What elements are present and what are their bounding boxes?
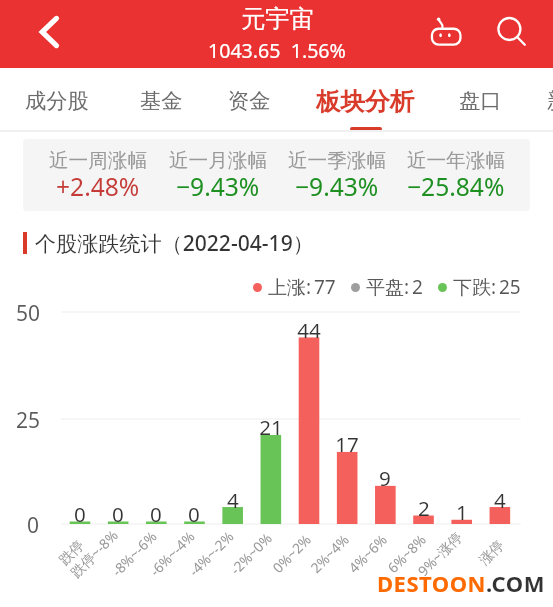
staticText: 元宇宙 [241,4,314,34]
staticText: 板块分析 [316,86,414,117]
staticText: 新闻 [547,88,553,115]
button[interactable]: 近一月涨幅 [158,139,277,211]
staticText: 4%~6% [344,530,391,577]
staticText: 21 [259,413,283,441]
button[interactable]: 平盘: [351,274,421,300]
staticText: 盘口 [459,88,502,115]
button[interactable]: 新闻 [547,68,553,131]
staticText: 1043.65 1.56% [208,37,346,64]
staticText: 17 [335,430,359,458]
button[interactable]: 成分股 [25,68,89,131]
staticText: −9.43% [295,170,379,204]
button[interactable]: 近一年涨幅 [396,139,515,211]
staticText: 0 [188,500,200,528]
staticText: 近一周涨幅 [49,148,147,173]
staticText: 6%~8% [383,530,430,577]
staticText: 2 [418,494,430,522]
button[interactable]: 盘口 [459,68,502,131]
staticText: 50 [16,299,41,328]
staticText: 平盘: [366,274,410,300]
staticText: 9 [379,464,391,492]
staticText: 0 [112,500,124,528]
staticText: 0 [150,500,162,528]
staticText: 近一年涨幅 [407,148,505,173]
staticText: 个股涨跌统计（2022-04-19） [35,228,314,257]
staticText: 25 [499,274,521,300]
staticText: 涨停 [476,537,508,569]
staticText: -6%~-4% [145,527,198,580]
staticText: -4%~-2% [184,527,237,580]
staticText: 基金 [140,88,183,115]
staticText: −25.84% [407,170,505,204]
button[interactable]: Search [492,15,528,51]
staticText: 9%~涨停 [413,527,466,580]
button[interactable]: 基金 [140,68,183,131]
button[interactable]: 下跌: [438,274,519,300]
staticText: 0 [74,500,86,528]
staticText: DESTOON [377,568,486,598]
staticText: 跌停 [56,537,88,569]
staticText: −9.43% [176,170,260,204]
staticText: 1 [456,498,468,526]
staticText: 跌停~-8% [66,526,122,581]
staticText: 资金 [228,88,271,115]
staticText: 2%~4% [306,530,353,577]
staticText: 25 [16,406,41,435]
staticText: 77 [314,274,336,300]
staticText: 成分股 [25,88,89,115]
staticText: 近一季涨幅 [288,148,386,173]
staticText: 上涨: [268,274,312,300]
staticText: 0%~2% [268,530,315,577]
staticText: -8%~-6% [107,527,160,580]
button[interactable]: Back [25,8,73,56]
button[interactable]: Assistant [427,15,463,51]
staticText: .COM [486,568,545,598]
button[interactable]: 近一季涨幅 [277,139,396,211]
button[interactable]: 资金 [228,68,271,131]
button[interactable]: 板块分析 [316,68,414,131]
button[interactable]: 上涨: [253,274,334,300]
staticText: 近一月涨幅 [169,148,267,173]
staticText: 下跌: [453,274,497,300]
staticText: 0 [27,511,40,540]
staticText: 2 [412,274,423,300]
staticText: 4 [494,486,506,514]
staticText: 4 [227,486,239,514]
staticText: -2%~0% [226,528,276,579]
staticText: +2.48% [56,170,140,204]
button[interactable]: 近一周涨幅 [38,139,158,211]
staticText: 44 [297,316,321,344]
